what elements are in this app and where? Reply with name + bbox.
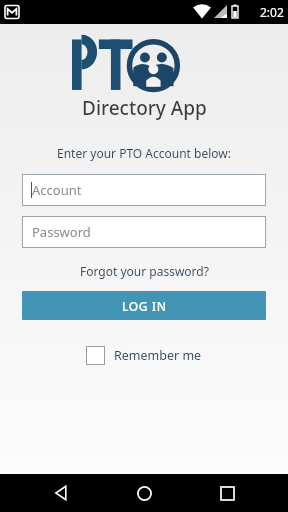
- staticText: Directory App: [82, 95, 207, 121]
- staticText: Forgot your password?: [80, 263, 209, 279]
- button[interactable]: LOG IN: [22, 291, 266, 320]
- staticText: Account: [32, 181, 82, 199]
- staticText: LOG IN: [122, 298, 167, 314]
- button[interactable]: Password: [22, 216, 266, 248]
- button[interactable]: Forgot your password?: [74, 261, 215, 281]
- button[interactable]: Remember me: [82, 344, 206, 367]
- button[interactable]: Home: [122, 474, 166, 512]
- button[interactable]: Back: [39, 474, 83, 512]
- staticText: Enter your PTO Account below:: [57, 145, 231, 161]
- staticText: 2:02: [260, 4, 284, 20]
- button[interactable]: Account: [22, 174, 266, 206]
- button[interactable]: Recent apps: [205, 474, 249, 512]
- staticText: Remember me: [114, 347, 202, 364]
- staticText: Password: [32, 223, 91, 241]
